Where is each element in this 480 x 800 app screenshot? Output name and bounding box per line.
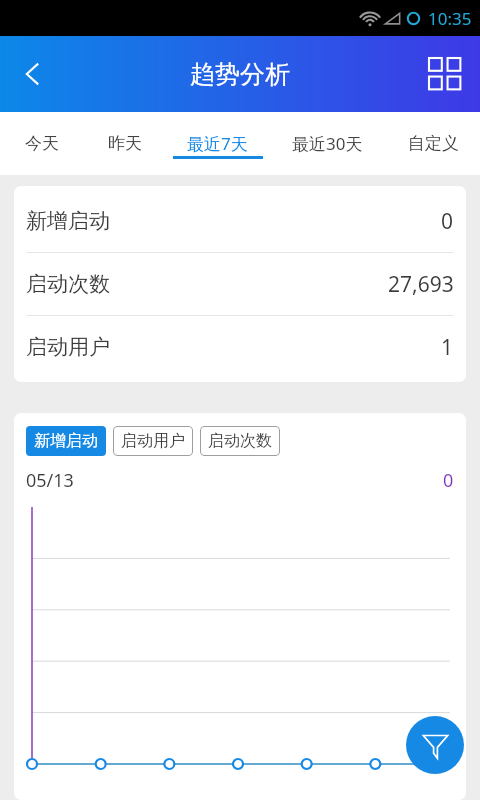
staticText: 今天 xyxy=(25,133,59,154)
staticText: 新增启动 xyxy=(26,208,110,234)
staticText: 昨天 xyxy=(108,133,142,154)
button[interactable]: 启动次数 xyxy=(14,253,466,315)
button[interactable]: Back xyxy=(0,36,66,112)
button[interactable]: 启动用户 xyxy=(113,426,193,456)
button[interactable]: 昨天 xyxy=(83,112,166,175)
button[interactable]: 自定义 xyxy=(386,112,480,175)
staticText: 最近30天 xyxy=(292,132,363,155)
button[interactable]: Filter xyxy=(406,716,464,774)
staticText: 0 xyxy=(441,207,454,236)
staticText: 趋势分析 xyxy=(190,59,290,90)
staticText: 1 xyxy=(441,333,454,362)
staticText: 启动次数 xyxy=(26,271,110,297)
staticText: 自定义 xyxy=(408,133,459,154)
staticText: 启动用户 xyxy=(121,431,185,451)
button[interactable]: 最近7天 xyxy=(166,112,269,175)
button[interactable]: 最近30天 xyxy=(269,112,386,175)
staticText: 10:35 xyxy=(428,7,472,30)
staticText: 0 xyxy=(443,468,454,493)
staticText: 05/13 xyxy=(26,468,74,493)
button[interactable]: 新增启动 xyxy=(26,426,106,456)
button[interactable]: 新增启动 xyxy=(14,190,466,252)
button[interactable]: 启动用户 xyxy=(14,316,466,378)
staticText: 启动次数 xyxy=(208,431,272,451)
staticText: 启动用户 xyxy=(26,334,110,360)
button[interactable]: 今天 xyxy=(0,112,83,175)
staticText: 新增启动 xyxy=(34,431,98,451)
staticText: 27,693 xyxy=(388,270,454,299)
button[interactable]: Grid view xyxy=(410,36,480,112)
staticText: 最近7天 xyxy=(187,132,248,155)
button[interactable]: 启动次数 xyxy=(200,426,280,456)
